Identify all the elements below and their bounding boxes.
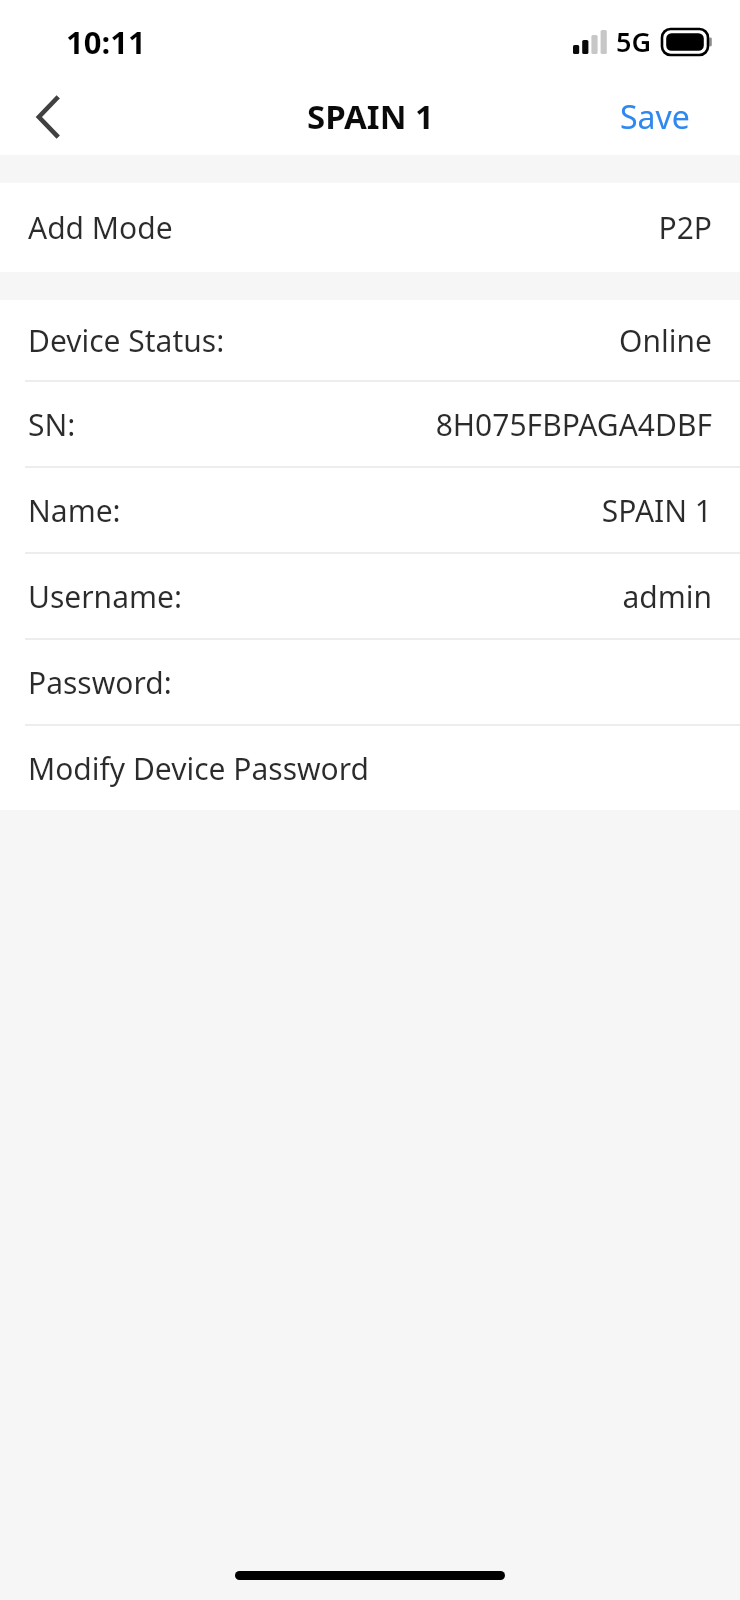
staticText: Device Status:: [28, 320, 225, 361]
staticText: P2P: [658, 207, 712, 248]
staticText: 5G: [616, 23, 652, 60]
staticText: Name:: [28, 490, 121, 531]
button[interactable]: Password:: [0, 640, 740, 724]
staticText: SN:: [28, 404, 76, 445]
button[interactable]: SN:: [0, 382, 740, 466]
button[interactable]: Modify Device Password: [0, 726, 740, 810]
staticText: 10:11: [66, 21, 146, 63]
button[interactable]: Username:: [0, 554, 740, 638]
staticText: Modify Device Password: [28, 748, 369, 789]
staticText: Online: [619, 320, 712, 361]
staticText: admin: [622, 576, 712, 617]
staticText: Username:: [28, 576, 182, 617]
staticText: SPAIN 1: [601, 490, 712, 531]
staticText: 8H075FBPAGA4DBF: [435, 404, 712, 445]
button[interactable]: Name:: [0, 468, 740, 552]
button[interactable]: Add Mode: [0, 183, 740, 272]
staticText: Password:: [28, 662, 172, 703]
staticText: Save: [620, 95, 690, 139]
button[interactable]: Save: [570, 78, 740, 155]
button[interactable]: Back: [0, 78, 96, 155]
button[interactable]: Device Status:: [0, 300, 740, 380]
staticText: SPAIN 1: [307, 94, 434, 139]
staticText: Add Mode: [28, 207, 173, 248]
